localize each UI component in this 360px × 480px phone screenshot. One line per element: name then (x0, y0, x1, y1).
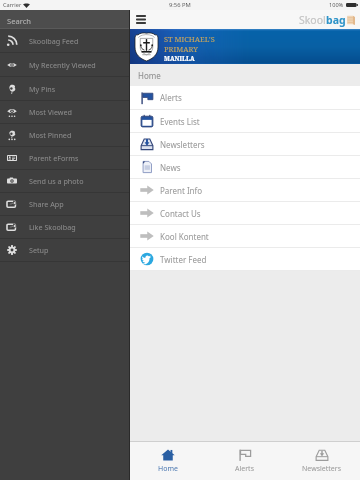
staticText: Home (158, 464, 178, 474)
staticText: Newsletters (160, 139, 205, 150)
button[interactable]: Most Viewed (0, 101, 130, 123)
button[interactable]: Newsletters (130, 133, 360, 155)
staticText: Most Viewed (29, 107, 72, 117)
staticText: My Pins (29, 84, 56, 94)
button[interactable]: Events List (130, 110, 360, 132)
staticText: Home (138, 70, 161, 81)
button[interactable]: Home (130, 442, 206, 480)
staticText: News (160, 162, 181, 173)
button[interactable]: Twitter Feed (130, 248, 360, 270)
button[interactable]: Kool Kontent (130, 225, 360, 247)
staticText: Newsletters (302, 464, 341, 474)
button[interactable]: Skoolbag Feed (0, 29, 130, 52)
staticText: 100% (329, 1, 344, 9)
button[interactable]: Newsletters (283, 442, 360, 480)
button[interactable]: Like Skoolbag (0, 216, 130, 238)
button[interactable]: Open navigation menu (134, 12, 148, 27)
staticText: ST MICHAEL'S (164, 34, 215, 44)
staticText: Kool Kontent (160, 231, 209, 242)
button[interactable]: Send us a photo (0, 170, 130, 192)
staticText: Parent Info (160, 185, 203, 196)
button[interactable]: News (130, 156, 360, 178)
staticText: Events List (160, 116, 200, 127)
staticText: Contact Us (160, 208, 201, 219)
button[interactable]: Setup (0, 239, 130, 261)
staticText: Alerts (160, 92, 182, 103)
staticText: 9:56 PM (169, 1, 191, 9)
staticText: Skoolbag Feed (29, 36, 79, 46)
staticText: Carrier (3, 1, 22, 9)
staticText: Like Skoolbag (29, 222, 76, 232)
staticText: bag (326, 13, 346, 27)
button[interactable]: Most Pinned (0, 124, 130, 146)
button[interactable]: Alerts (130, 86, 360, 109)
staticText: Send us a photo (29, 176, 84, 186)
staticText: Skool (299, 13, 326, 27)
button[interactable]: Alerts (206, 442, 283, 480)
button[interactable]: Parent eForms (0, 147, 130, 169)
staticText: Most Pinned (29, 130, 72, 140)
staticText: Search (7, 16, 32, 26)
staticText: Twitter Feed (160, 254, 207, 265)
staticText: Alerts (235, 464, 254, 474)
button[interactable]: My Recently Viewed (0, 53, 130, 76)
staticText: Setup (29, 245, 49, 255)
button[interactable]: Share App (0, 193, 130, 215)
staticText: My Recently Viewed (29, 60, 96, 70)
staticText: PRIMARY (164, 44, 198, 54)
staticText: MANILLA (164, 54, 195, 62)
button[interactable]: My Pins (0, 77, 130, 100)
staticText: Share App (29, 199, 64, 209)
button[interactable]: Search (0, 10, 130, 29)
button[interactable]: Contact Us (130, 202, 360, 224)
button[interactable]: Parent Info (130, 179, 360, 201)
staticText: Parent eForms (29, 153, 79, 163)
